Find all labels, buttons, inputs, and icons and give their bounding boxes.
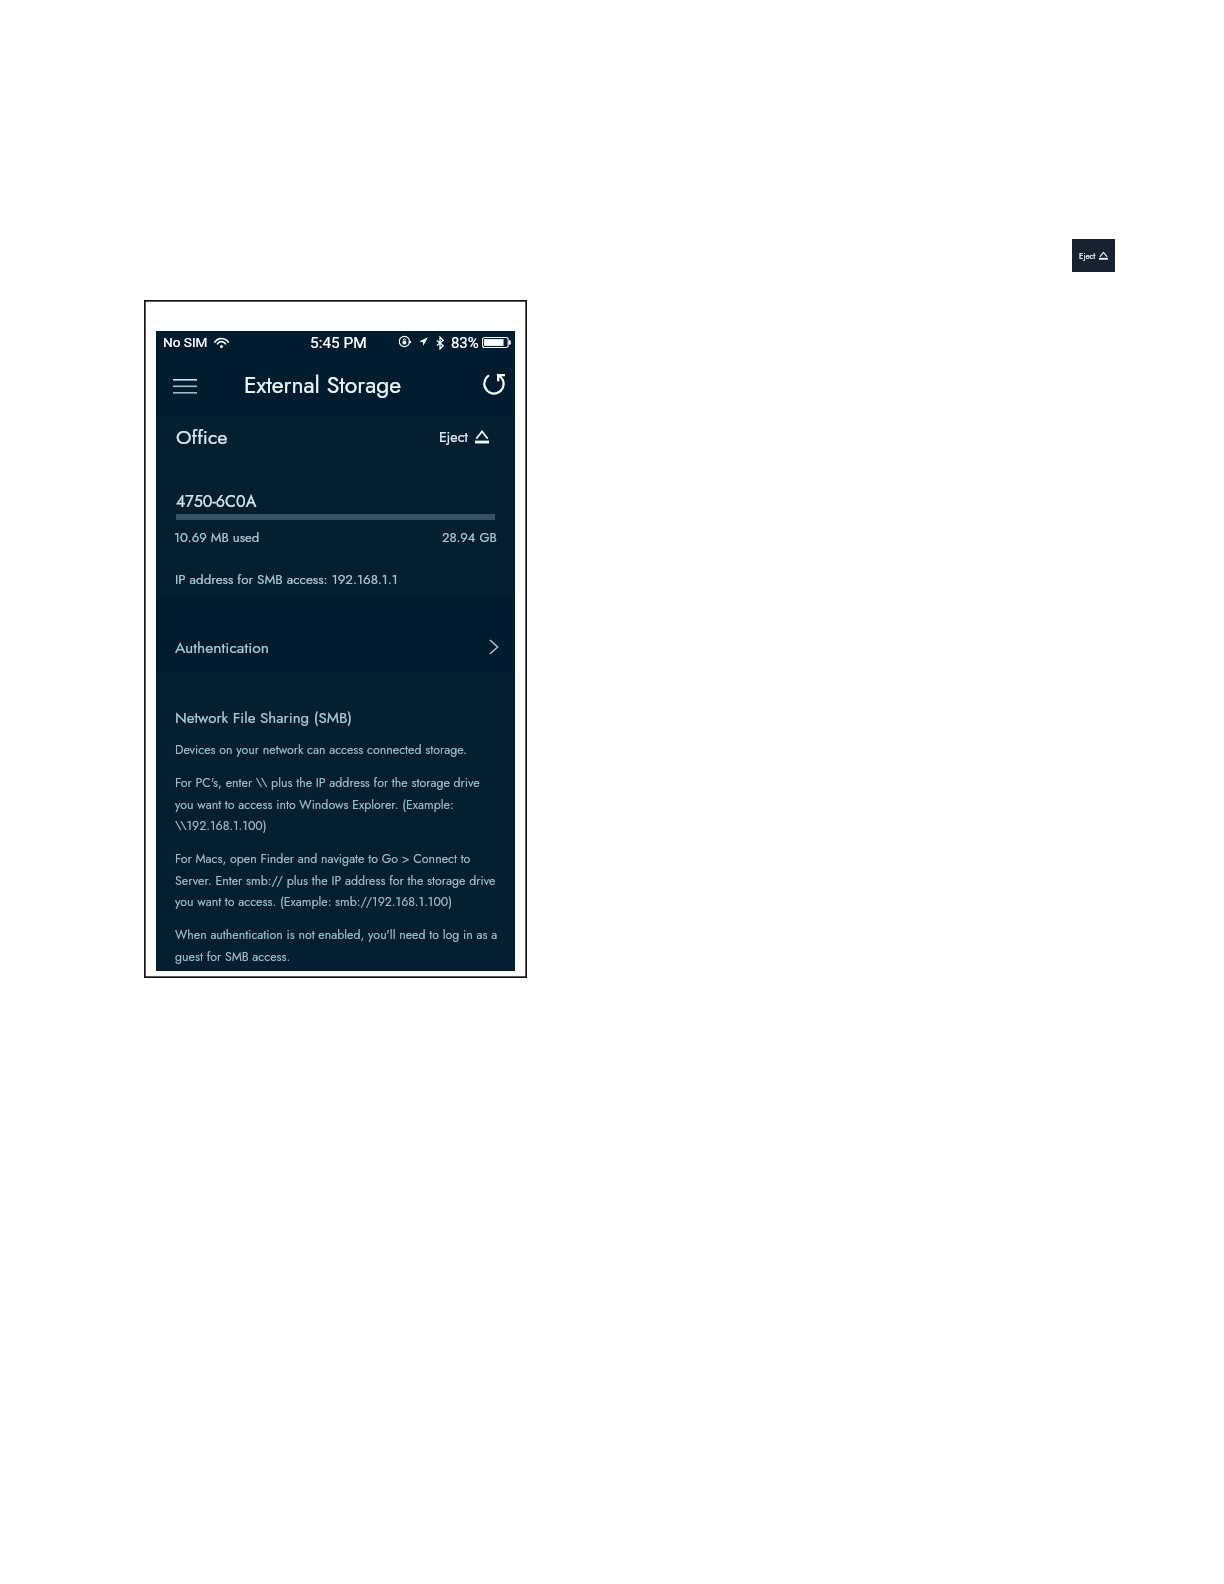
- staticText: Eject: [439, 427, 468, 448]
- staticText: When authentication is not enabled, you'…: [175, 926, 507, 965]
- button[interactable]: [156, 627, 515, 669]
- staticText: Eject: [1079, 250, 1096, 262]
- staticText: 4750-6C0A: [176, 490, 257, 513]
- staticText: IP address for SMB access: 192.168.1.1: [175, 570, 398, 589]
- staticText: External Storage: [244, 368, 402, 401]
- staticText: Network File Sharing (SMB): [175, 707, 353, 729]
- staticText: 28.94 GB: [442, 528, 497, 547]
- staticText: Authentication: [175, 636, 270, 659]
- staticText: No SIM: [163, 334, 208, 350]
- button[interactable]: Refresh: [478, 369, 510, 401]
- staticText: 10.69 MB used: [174, 528, 260, 547]
- staticText: Office: [176, 423, 228, 451]
- staticText: Devices on your network can access conne…: [175, 741, 507, 759]
- staticText: For Macs, open Finder and navigate to Go…: [175, 850, 507, 910]
- staticText: For PC's, enter \\ plus the IP address f…: [175, 774, 507, 834]
- button[interactable]: [436, 425, 494, 451]
- button[interactable]: Eject: [1072, 239, 1115, 272]
- button[interactable]: Menu: [167, 369, 203, 399]
- staticText: 83%: [451, 334, 479, 351]
- staticText: 5:45 PM: [310, 334, 367, 352]
